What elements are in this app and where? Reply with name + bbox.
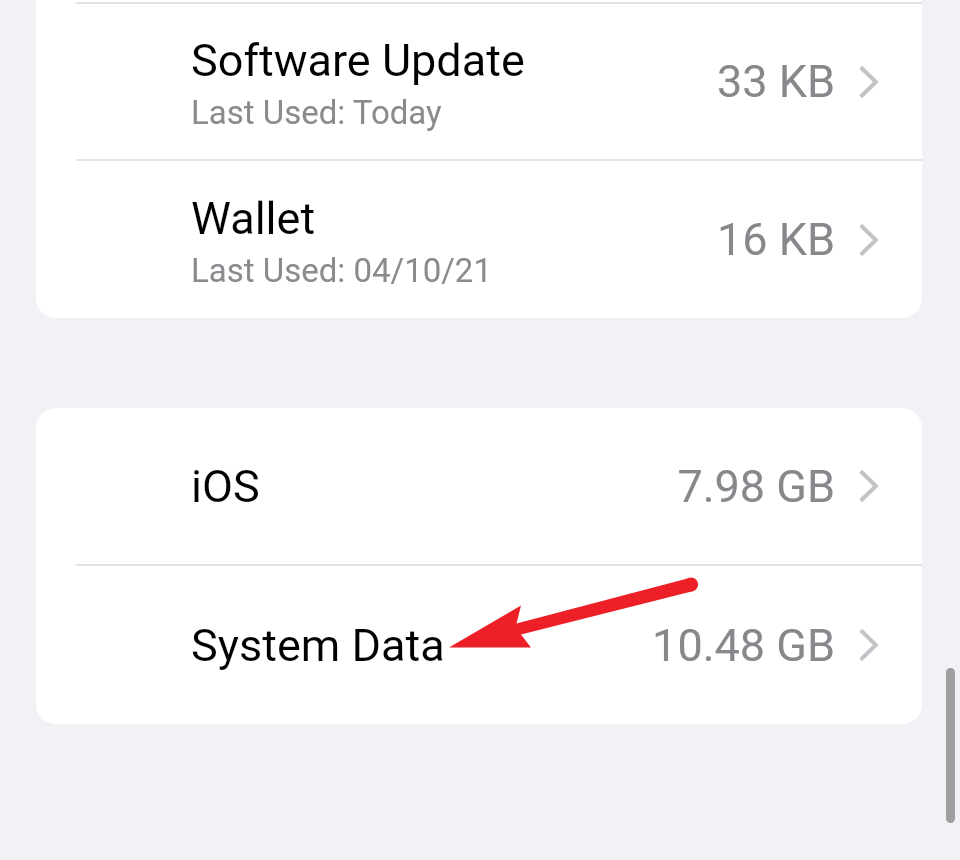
other: Show details <box>855 220 881 260</box>
staticText: Last Used: Today <box>191 93 442 132</box>
staticText: Last Used: 04/10/21 <box>191 251 492 290</box>
other: Show details <box>855 62 881 102</box>
staticText: 16 KB <box>716 213 835 266</box>
button[interactable]: iOS <box>36 408 922 564</box>
staticText: Software Update <box>191 34 525 87</box>
other: Annotation arrow pointing at System Data <box>0 0 960 860</box>
staticText: 10.48 GB <box>652 619 835 672</box>
staticText: 7.98 GB <box>677 460 835 513</box>
staticText: System Data <box>191 619 445 672</box>
staticText: iOS <box>191 460 260 513</box>
staticText: 33 KB <box>716 55 835 108</box>
button[interactable]: System Data <box>36 566 922 724</box>
button[interactable]: Wallet <box>36 161 922 318</box>
other: Show details <box>855 466 881 506</box>
button[interactable]: Software Update <box>36 4 922 159</box>
other: Show details <box>855 625 881 665</box>
staticText: Wallet <box>191 192 316 245</box>
